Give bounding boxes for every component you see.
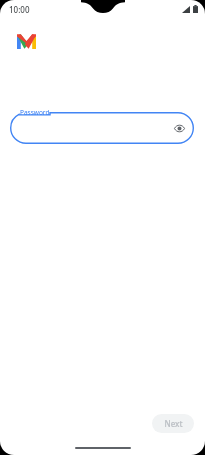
button[interactable]: Show password — [171, 120, 187, 136]
button[interactable]: Next — [152, 414, 194, 433]
staticText: Password — [20, 108, 50, 117]
staticText: Next — [164, 418, 183, 429]
button[interactable]: Password — [10, 112, 194, 144]
staticText: 10:00 — [9, 4, 30, 15]
